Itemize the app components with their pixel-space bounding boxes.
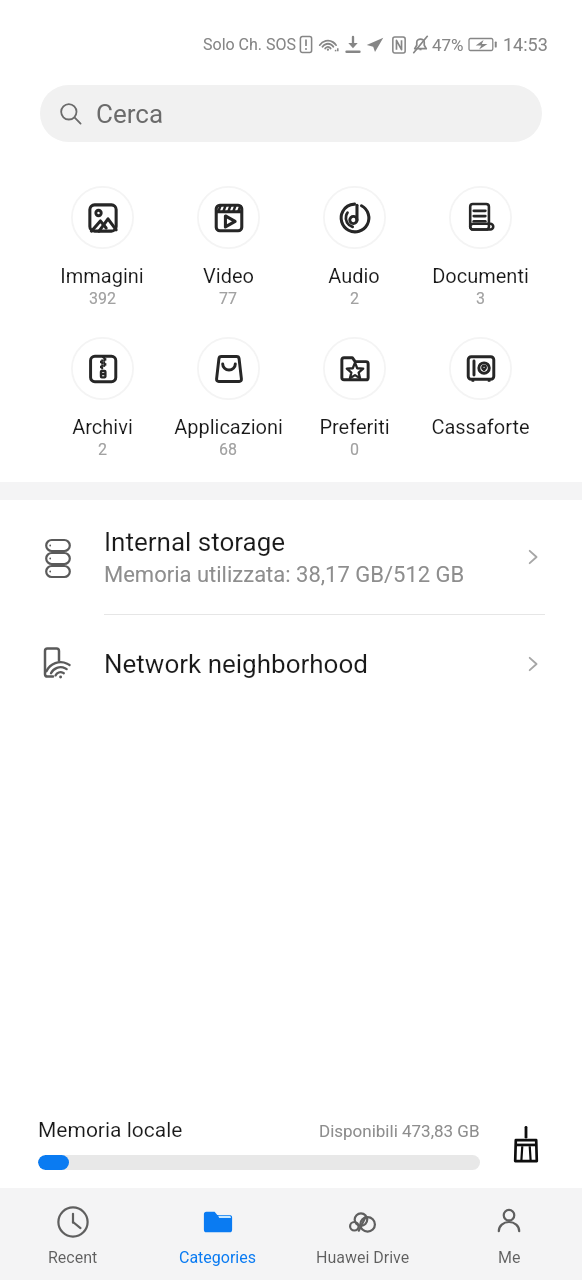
button[interactable]: Me bbox=[436, 1188, 582, 1280]
staticText: 14:53 bbox=[503, 34, 548, 55]
button[interactable]: Video bbox=[165, 186, 291, 308]
button[interactable]: Archivi bbox=[39, 337, 165, 459]
staticText: 3 bbox=[476, 289, 485, 308]
button[interactable]: Categories bbox=[145, 1188, 290, 1280]
staticText: Categories bbox=[179, 1248, 256, 1267]
staticText: Preferiti bbox=[319, 415, 390, 438]
staticText: 77 bbox=[219, 289, 237, 308]
button[interactable]: Recent bbox=[0, 1188, 145, 1280]
staticText: Recent bbox=[48, 1248, 98, 1267]
button[interactable]: Network neighborhood bbox=[0, 615, 582, 713]
staticText: Me bbox=[498, 1248, 521, 1267]
staticText: Cerca bbox=[96, 99, 164, 129]
button[interactable]: Internal storage bbox=[0, 500, 582, 614]
staticText: 47% bbox=[432, 35, 464, 55]
button[interactable]: Applicazioni bbox=[165, 337, 291, 459]
staticText: 2 bbox=[350, 289, 359, 308]
staticText: 0 bbox=[350, 440, 359, 459]
button[interactable]: Huawei Drive bbox=[290, 1188, 436, 1280]
staticText: 2 bbox=[98, 440, 107, 459]
button[interactable]: Clean up storage bbox=[504, 1122, 548, 1166]
button[interactable]: Immagini bbox=[39, 186, 165, 308]
button[interactable]: Audio bbox=[291, 186, 417, 308]
staticText: Audio bbox=[328, 264, 380, 287]
staticText: Memoria utilizzata: 38,17 GB/512 GB bbox=[104, 562, 465, 588]
staticText: Applicazioni bbox=[174, 415, 283, 438]
staticText: Immagini bbox=[60, 264, 144, 287]
staticText: Huawei Drive bbox=[316, 1248, 410, 1267]
button[interactable]: Cassaforte bbox=[417, 337, 543, 438]
staticText: Documenti bbox=[432, 264, 529, 287]
staticText: 68 bbox=[219, 440, 237, 459]
staticText: Internal storage bbox=[104, 527, 286, 557]
staticText: Cassaforte bbox=[431, 415, 530, 438]
staticText: Archivi bbox=[72, 415, 133, 438]
staticText: Video bbox=[203, 264, 254, 287]
button[interactable]: Documenti bbox=[417, 186, 543, 308]
button[interactable]: Cerca bbox=[40, 85, 542, 142]
staticText: Memoria locale bbox=[38, 1118, 183, 1143]
staticText: Solo Ch. SOS bbox=[203, 35, 297, 54]
staticText: Network neighborhood bbox=[104, 649, 522, 679]
staticText: 392 bbox=[89, 289, 116, 308]
staticText: Disponibili 473,83 GB bbox=[319, 1121, 480, 1141]
button[interactable]: Preferiti bbox=[291, 337, 417, 459]
